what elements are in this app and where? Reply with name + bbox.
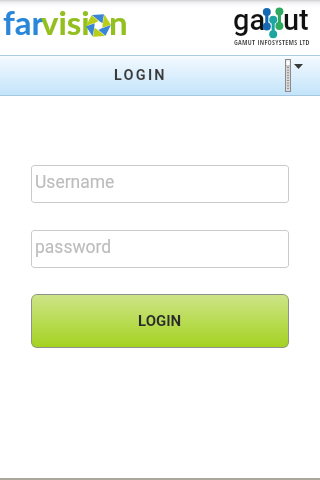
staticText: LOGIN bbox=[114, 67, 167, 84]
staticText: Username bbox=[35, 172, 115, 193]
staticText: LOGIN bbox=[138, 312, 182, 330]
staticText: ga bbox=[233, 3, 266, 37]
staticText: ut bbox=[283, 3, 309, 37]
button[interactable]: password bbox=[31, 230, 289, 268]
staticText: password bbox=[35, 237, 112, 258]
button[interactable]: LOGIN bbox=[31, 294, 289, 348]
button[interactable]: Username bbox=[31, 165, 289, 203]
staticText: n bbox=[109, 2, 128, 42]
button[interactable]: Select option bbox=[280, 55, 310, 95]
staticText: GAMUT INFOSYSTEMS LTD bbox=[234, 38, 310, 48]
staticText: visi bbox=[41, 2, 90, 42]
staticText: far bbox=[3, 2, 44, 42]
